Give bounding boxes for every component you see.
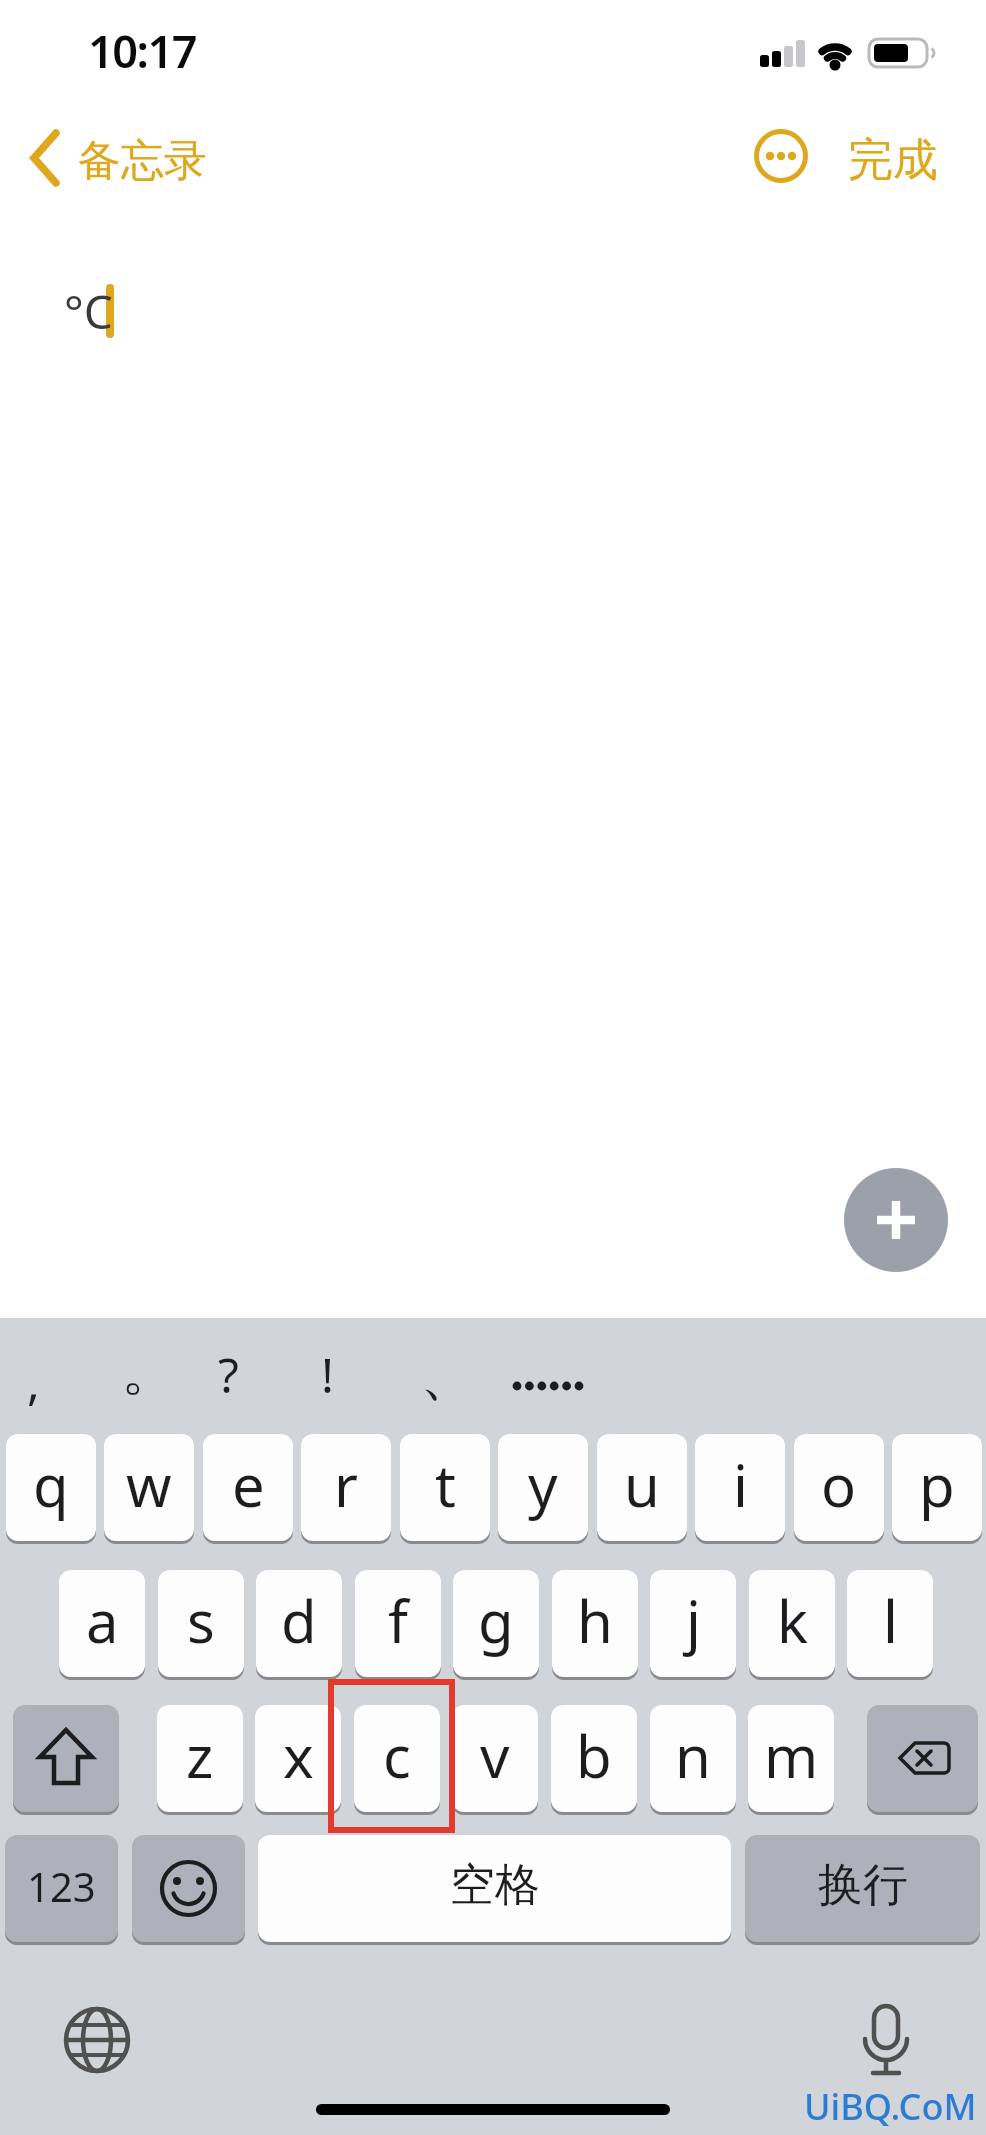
staticText: n <box>675 1716 711 1795</box>
staticText: u <box>624 1445 660 1524</box>
button[interactable]: j <box>650 1570 736 1677</box>
button[interactable]: u <box>597 1434 687 1541</box>
staticText: o <box>821 1445 857 1524</box>
staticText: t <box>435 1445 456 1524</box>
staticText: i <box>733 1445 748 1524</box>
button[interactable]: l <box>847 1570 933 1677</box>
staticText: q <box>33 1445 69 1524</box>
button[interactable]: 123 <box>5 1835 118 1942</box>
button[interactable]: e <box>203 1434 293 1541</box>
button[interactable]: r <box>301 1434 391 1541</box>
button[interactable]: 完成 <box>848 132 938 189</box>
staticText: c <box>383 1716 411 1795</box>
staticText: v <box>480 1716 510 1795</box>
staticText: e <box>232 1445 265 1524</box>
staticText: l <box>883 1581 898 1660</box>
staticText: k <box>777 1581 808 1660</box>
staticText: ? <box>218 1342 239 1407</box>
staticText: x <box>283 1716 314 1795</box>
staticText: b <box>576 1716 612 1795</box>
staticText: 10:17 <box>88 20 196 81</box>
staticText: m <box>764 1716 819 1795</box>
button[interactable]: t <box>400 1434 490 1541</box>
button[interactable]: q <box>6 1434 96 1541</box>
button[interactable]: p <box>892 1434 982 1541</box>
button[interactable]: a <box>59 1570 145 1677</box>
staticText: 空格 <box>450 1857 540 1914</box>
button[interactable]: h <box>552 1570 638 1677</box>
staticText: 换行 <box>818 1857 908 1914</box>
button[interactable]: f <box>355 1570 441 1677</box>
staticText: f <box>388 1581 408 1660</box>
staticText: w <box>126 1445 172 1524</box>
button[interactable] <box>132 1835 245 1942</box>
button[interactable]: s <box>158 1570 244 1677</box>
button[interactable]: m <box>748 1705 834 1812</box>
staticText: ! <box>321 1342 334 1407</box>
staticText: y <box>528 1445 558 1524</box>
staticText: j <box>686 1581 701 1660</box>
button[interactable]: i <box>695 1434 785 1541</box>
staticText: 备忘录 <box>78 134 207 188</box>
button[interactable]: 空格 <box>258 1835 731 1942</box>
button[interactable]: d <box>256 1570 342 1677</box>
staticText: 123 <box>27 1859 96 1913</box>
button[interactable]: g <box>453 1570 539 1677</box>
button[interactable]: n <box>650 1705 736 1812</box>
button[interactable] <box>26 126 206 188</box>
staticText: s <box>187 1581 215 1660</box>
staticText: p <box>919 1445 955 1524</box>
staticText: z <box>186 1716 214 1795</box>
button[interactable]: b <box>551 1705 637 1812</box>
staticText: a <box>86 1581 119 1660</box>
button[interactable] <box>844 1168 948 1272</box>
button[interactable]: x <box>255 1705 341 1812</box>
staticText: h <box>577 1581 613 1660</box>
button[interactable]: w <box>104 1434 194 1541</box>
button[interactable]: o <box>794 1434 884 1541</box>
button[interactable]: y <box>498 1434 588 1541</box>
staticText: , <box>27 1349 40 1414</box>
button[interactable] <box>867 1705 978 1812</box>
button[interactable]: 换行 <box>745 1835 980 1942</box>
staticText: r <box>334 1445 358 1524</box>
button[interactable]: k <box>749 1570 835 1677</box>
staticText: g <box>478 1581 514 1660</box>
staticText: d <box>281 1581 317 1660</box>
button[interactable]: v <box>452 1705 538 1812</box>
staticText: 、 <box>420 1340 476 1411</box>
staticText: UiBQ.CoM <box>804 2082 977 2131</box>
staticText: °C <box>64 280 113 343</box>
button[interactable] <box>13 1705 119 1812</box>
button[interactable]: z <box>157 1705 243 1812</box>
button[interactable]: c <box>354 1705 440 1812</box>
staticText: 。 <box>121 1335 177 1406</box>
